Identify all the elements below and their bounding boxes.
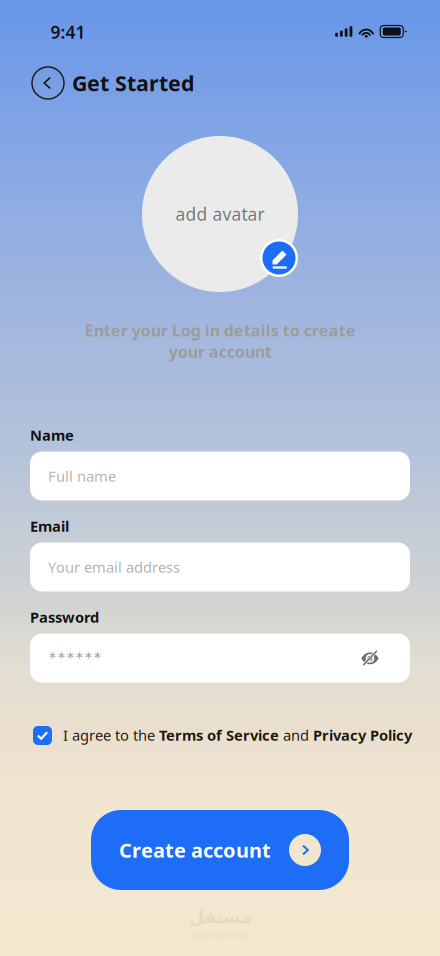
button[interactable]: ∗∗∗∗∗∗ [30,633,410,682]
staticText: Enter your Log in details to create your… [84,320,355,362]
button[interactable]: Create account [91,810,349,890]
button[interactable]: Full name [30,451,410,500]
staticText: Create account [119,837,271,863]
staticText: mostaql.com [191,928,248,940]
staticText: 9:41 [50,20,85,43]
button[interactable]: Back [32,67,64,99]
staticText: Email [30,516,69,536]
staticText: مستقل [188,907,251,927]
staticText: I agree to the Terms of Service and Priv… [63,725,412,745]
staticText: Password [30,607,99,627]
button[interactable]: Your email address [30,542,410,591]
staticText: add avatar [175,202,264,225]
staticText: Your email address [48,557,180,577]
button[interactable]: Edit avatar [260,239,298,277]
staticText: Get Started [72,69,194,97]
button[interactable]: I agree to the Terms of Service and Priv… [33,720,433,750]
staticText: Full name [48,466,116,486]
staticText: ∗∗∗∗∗∗ [48,649,102,661]
staticText: Name [30,425,74,445]
